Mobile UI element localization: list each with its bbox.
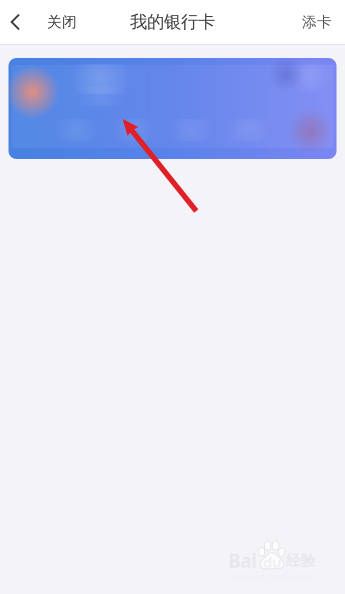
staticText: du bbox=[263, 552, 282, 572]
staticText: 关闭 bbox=[47, 13, 77, 31]
staticText: Bai bbox=[228, 548, 257, 573]
staticText: 我的银行卡 bbox=[130, 11, 215, 33]
button[interactable]: 添卡 bbox=[289, 0, 345, 44]
staticText: 经验 bbox=[286, 551, 316, 569]
button[interactable]: 关闭 bbox=[0, 0, 89, 44]
staticText: 添卡 bbox=[302, 13, 332, 31]
